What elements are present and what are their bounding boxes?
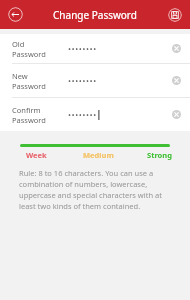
staticText: Rule: 8 to 16 characters. You can use a … xyxy=(19,168,178,211)
button[interactable]: Confirm Password xyxy=(0,98,190,131)
staticText: Week xyxy=(26,150,47,160)
button[interactable]: Back xyxy=(8,7,23,22)
button[interactable]: New Password xyxy=(0,64,190,97)
staticText: Change Password xyxy=(53,8,137,22)
staticText: Strong xyxy=(147,150,172,160)
staticText: Medium xyxy=(83,150,114,160)
staticText: Old Password xyxy=(12,39,58,59)
button[interactable]: Clear Old Password xyxy=(172,44,181,53)
button[interactable]: Clear Confirm Password xyxy=(172,110,181,119)
staticText: Confirm Password xyxy=(12,105,58,125)
staticText: New Password xyxy=(12,71,58,91)
button[interactable]: Save xyxy=(168,8,182,22)
button[interactable]: Clear New Password xyxy=(172,76,181,85)
button[interactable]: Old Password xyxy=(0,34,190,63)
